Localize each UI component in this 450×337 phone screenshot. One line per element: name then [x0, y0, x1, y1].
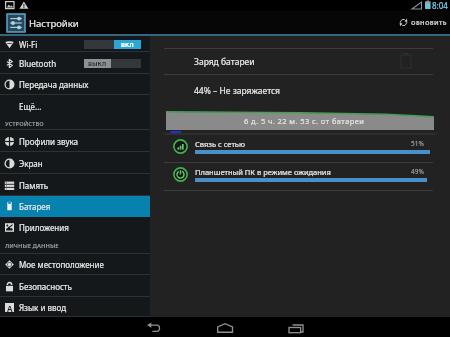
button[interactable]: Заряд батареи	[150, 48, 450, 74]
staticText: Планшетный ПК в режиме ожидания	[195, 167, 331, 177]
staticText: 8:04	[432, 0, 448, 11]
button[interactable]: Передача данных	[0, 74, 150, 95]
staticText: ОБНОВИТЬ	[411, 19, 447, 27]
button[interactable]: Back	[138, 317, 170, 337]
button[interactable]: ВКЛ	[84, 40, 141, 49]
staticText: Профили звука	[19, 136, 79, 147]
staticText: A	[7, 303, 13, 312]
button[interactable]: Экран	[0, 152, 150, 174]
staticText: Мое местоположение	[19, 259, 104, 270]
button[interactable]: ОБНОВИТЬ	[393, 11, 450, 34]
staticText: Ещё...	[19, 101, 42, 112]
staticText: Bluetooth	[19, 58, 57, 69]
staticText: Приложения	[19, 222, 69, 233]
button[interactable]: A	[0, 297, 150, 317]
staticText: Экран	[19, 158, 43, 169]
staticText: Связь с сетью	[195, 139, 245, 149]
button[interactable]: ВЫКЛ	[84, 59, 141, 68]
staticText: Память	[19, 180, 49, 191]
button[interactable]: Home	[209, 317, 241, 337]
button[interactable]: Ещё...	[0, 95, 150, 117]
staticText: 51%	[411, 139, 424, 148]
button[interactable]: Связь с сетью	[150, 133, 450, 161]
staticText: ВЫКЛ	[88, 60, 107, 68]
staticText: УСТРОЙСТВО	[5, 120, 44, 128]
staticText: Безопасность	[19, 281, 72, 292]
staticText: 49%	[411, 167, 424, 176]
staticText: 6 д. 5 ч. 22 м. 53 с. от батареи	[244, 116, 365, 126]
staticText: ВКЛ	[121, 41, 134, 49]
button[interactable]: Батарея	[0, 196, 150, 217]
button[interactable]: Recent apps	[281, 317, 313, 337]
button[interactable]: Настройки	[0, 14, 79, 32]
button[interactable]: Wi-Fi	[0, 36, 150, 52]
button[interactable]: Bluetooth	[0, 52, 150, 74]
button[interactable]: Мое местоположение	[0, 254, 150, 275]
button[interactable]: Планшетный ПК в режиме ожидания	[150, 161, 450, 189]
button[interactable]: Приложения	[0, 217, 150, 238]
staticText: Wi-Fi	[19, 39, 38, 50]
button[interactable]: Профили звука	[0, 130, 150, 152]
staticText: Заряд батареи	[194, 56, 255, 68]
staticText: Передача данных	[19, 79, 89, 90]
staticText: Настройки	[29, 17, 79, 30]
button[interactable]: Память	[0, 174, 150, 196]
staticText: Язык и ввод	[19, 302, 67, 313]
staticText: ЛИЧНЫЕ ДАННЫЕ	[5, 242, 59, 250]
button[interactable]: Безопасность	[0, 275, 150, 297]
staticText: Батарея	[19, 201, 51, 212]
staticText: 44% – Не заряжается	[194, 85, 281, 97]
